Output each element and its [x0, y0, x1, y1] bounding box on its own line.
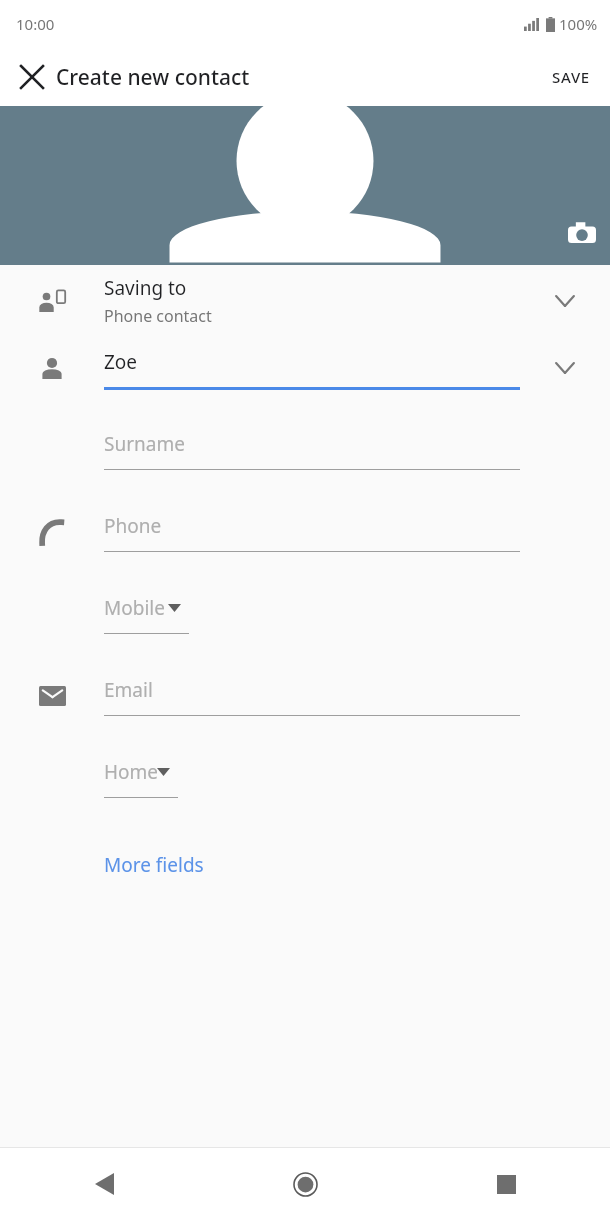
staticText: Home — [104, 759, 159, 785]
staticText: Phone — [104, 513, 162, 539]
button[interactable]: Add contact photo — [0, 106, 610, 265]
button[interactable]: SAVE — [540, 57, 602, 97]
staticText: SAVE — [552, 67, 590, 87]
staticText: Email — [104, 677, 153, 703]
button[interactable]: Surname — [0, 419, 610, 501]
button[interactable]: Home — [104, 747, 178, 798]
button[interactable]: Home — [279, 1158, 331, 1210]
staticText: Zoe — [104, 349, 138, 375]
button[interactable]: Phone — [0, 501, 610, 583]
staticText: More fields — [104, 852, 204, 878]
button[interactable]: Saving to — [0, 265, 610, 337]
button[interactable]: Mobile — [104, 583, 189, 634]
button[interactable]: More fields — [104, 852, 204, 878]
staticText: 100% — [559, 14, 598, 34]
staticText: Saving to — [104, 275, 187, 301]
staticText: Phone contact — [104, 305, 212, 327]
button[interactable]: Back — [78, 1158, 130, 1210]
button[interactable]: Zoe — [0, 337, 610, 419]
button[interactable]: Email — [0, 665, 610, 747]
staticText: 10:00 — [16, 14, 55, 34]
staticText: Surname — [104, 431, 185, 457]
staticText: Mobile — [104, 595, 165, 621]
staticText: Create new contact — [56, 63, 250, 92]
button[interactable]: Close — [8, 53, 56, 101]
button[interactable]: Recent apps — [480, 1158, 532, 1210]
